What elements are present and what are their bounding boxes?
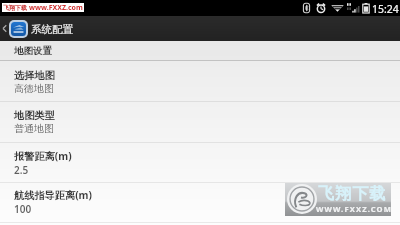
staticText: 普通地图 (14, 122, 54, 135)
staticText: 100 (14, 202, 32, 216)
staticText: 15:24 (372, 2, 399, 16)
staticText: 系统配置 (31, 23, 73, 36)
button[interactable]: 报警距离(m) (0, 143, 400, 183)
staticText: 2.5 (14, 163, 29, 177)
staticText: 高德地图 (14, 82, 54, 95)
staticText: 报警距离(m) (14, 149, 72, 163)
button[interactable]: 航线指导距离(m) (0, 183, 400, 223)
staticText: 地图设置 (14, 45, 52, 57)
staticText: WWW.FXXZ.COM (316, 204, 392, 214)
button[interactable]: Back (0, 16, 9, 41)
staticText: 飞翔下载 (318, 184, 387, 204)
staticText: 航线指导距离(m) (14, 188, 92, 202)
button[interactable]: 地图类型 (0, 102, 400, 143)
button[interactable]: 选择地图 (0, 61, 400, 102)
staticText: 地图类型 (14, 109, 55, 122)
staticText: www.FXXZ.com (29, 3, 83, 12)
staticText: 选择地图 (14, 69, 55, 82)
staticText: 飞翔下载 (3, 4, 27, 12)
